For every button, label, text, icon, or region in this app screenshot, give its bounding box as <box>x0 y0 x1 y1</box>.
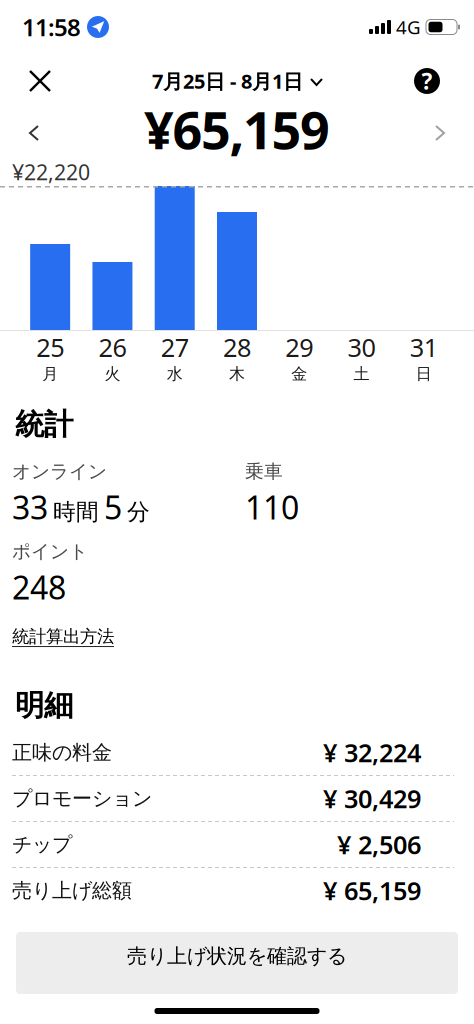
staticText: 土 <box>354 364 370 384</box>
staticText: 木 <box>229 364 245 384</box>
staticText: 明細 <box>15 687 73 723</box>
staticText: 31 <box>410 330 438 364</box>
staticText: ¥ 32,224 <box>323 736 421 769</box>
staticText: 水 <box>167 364 183 384</box>
staticText: プロモーション <box>12 786 152 811</box>
staticText: 29 <box>285 330 313 364</box>
staticText: オンライン <box>12 460 107 483</box>
staticText: 28 <box>223 330 251 364</box>
staticText: 統計 <box>15 406 73 442</box>
button[interactable] <box>0 71 50 91</box>
staticText: ¥22,220 <box>12 158 90 186</box>
staticText: ¥ 30,429 <box>323 782 421 815</box>
staticText: ¥65,159 <box>144 94 330 164</box>
staticText: 25 <box>36 330 64 364</box>
button[interactable]: 統計算出方法 <box>12 626 114 647</box>
button[interactable]: 売り上げ状況を確認する <box>0 932 474 994</box>
button[interactable] <box>0 126 38 140</box>
staticText: 火 <box>104 364 120 384</box>
staticText: 248 <box>12 566 66 608</box>
staticText: ¥ 2,506 <box>337 828 421 861</box>
button[interactable]: 7月25日 - 8月1日 <box>152 68 322 94</box>
staticText: 金 <box>291 364 307 384</box>
staticText: ? <box>421 66 432 96</box>
staticText: 時間 <box>53 498 99 526</box>
button[interactable]: ? <box>414 66 474 96</box>
staticText: 30 <box>348 330 376 364</box>
staticText: 27 <box>161 330 189 364</box>
staticText: 乗車 <box>245 460 283 483</box>
staticText: 売り上げ状況を確認する <box>127 944 347 968</box>
staticText: 日 <box>416 364 432 384</box>
staticText: 7月25日 - 8月1日 <box>152 68 303 94</box>
staticText: 分 <box>127 498 150 526</box>
staticText: 4G <box>396 15 421 39</box>
button[interactable] <box>436 126 474 140</box>
staticText: ポイント <box>12 540 88 563</box>
staticText: 33 <box>12 486 48 528</box>
staticText: 売り上げ総額 <box>12 878 132 903</box>
staticText: 統計算出方法 <box>12 626 114 647</box>
staticText: 月 <box>42 364 58 384</box>
staticText: ¥ 65,159 <box>323 874 421 907</box>
staticText: 110 <box>245 486 299 528</box>
staticText: 5 <box>104 486 122 528</box>
staticText: 正味の料金 <box>12 740 112 765</box>
staticText: 26 <box>98 330 126 364</box>
staticText: 11:58 <box>22 11 81 43</box>
staticText: チップ <box>12 832 72 857</box>
